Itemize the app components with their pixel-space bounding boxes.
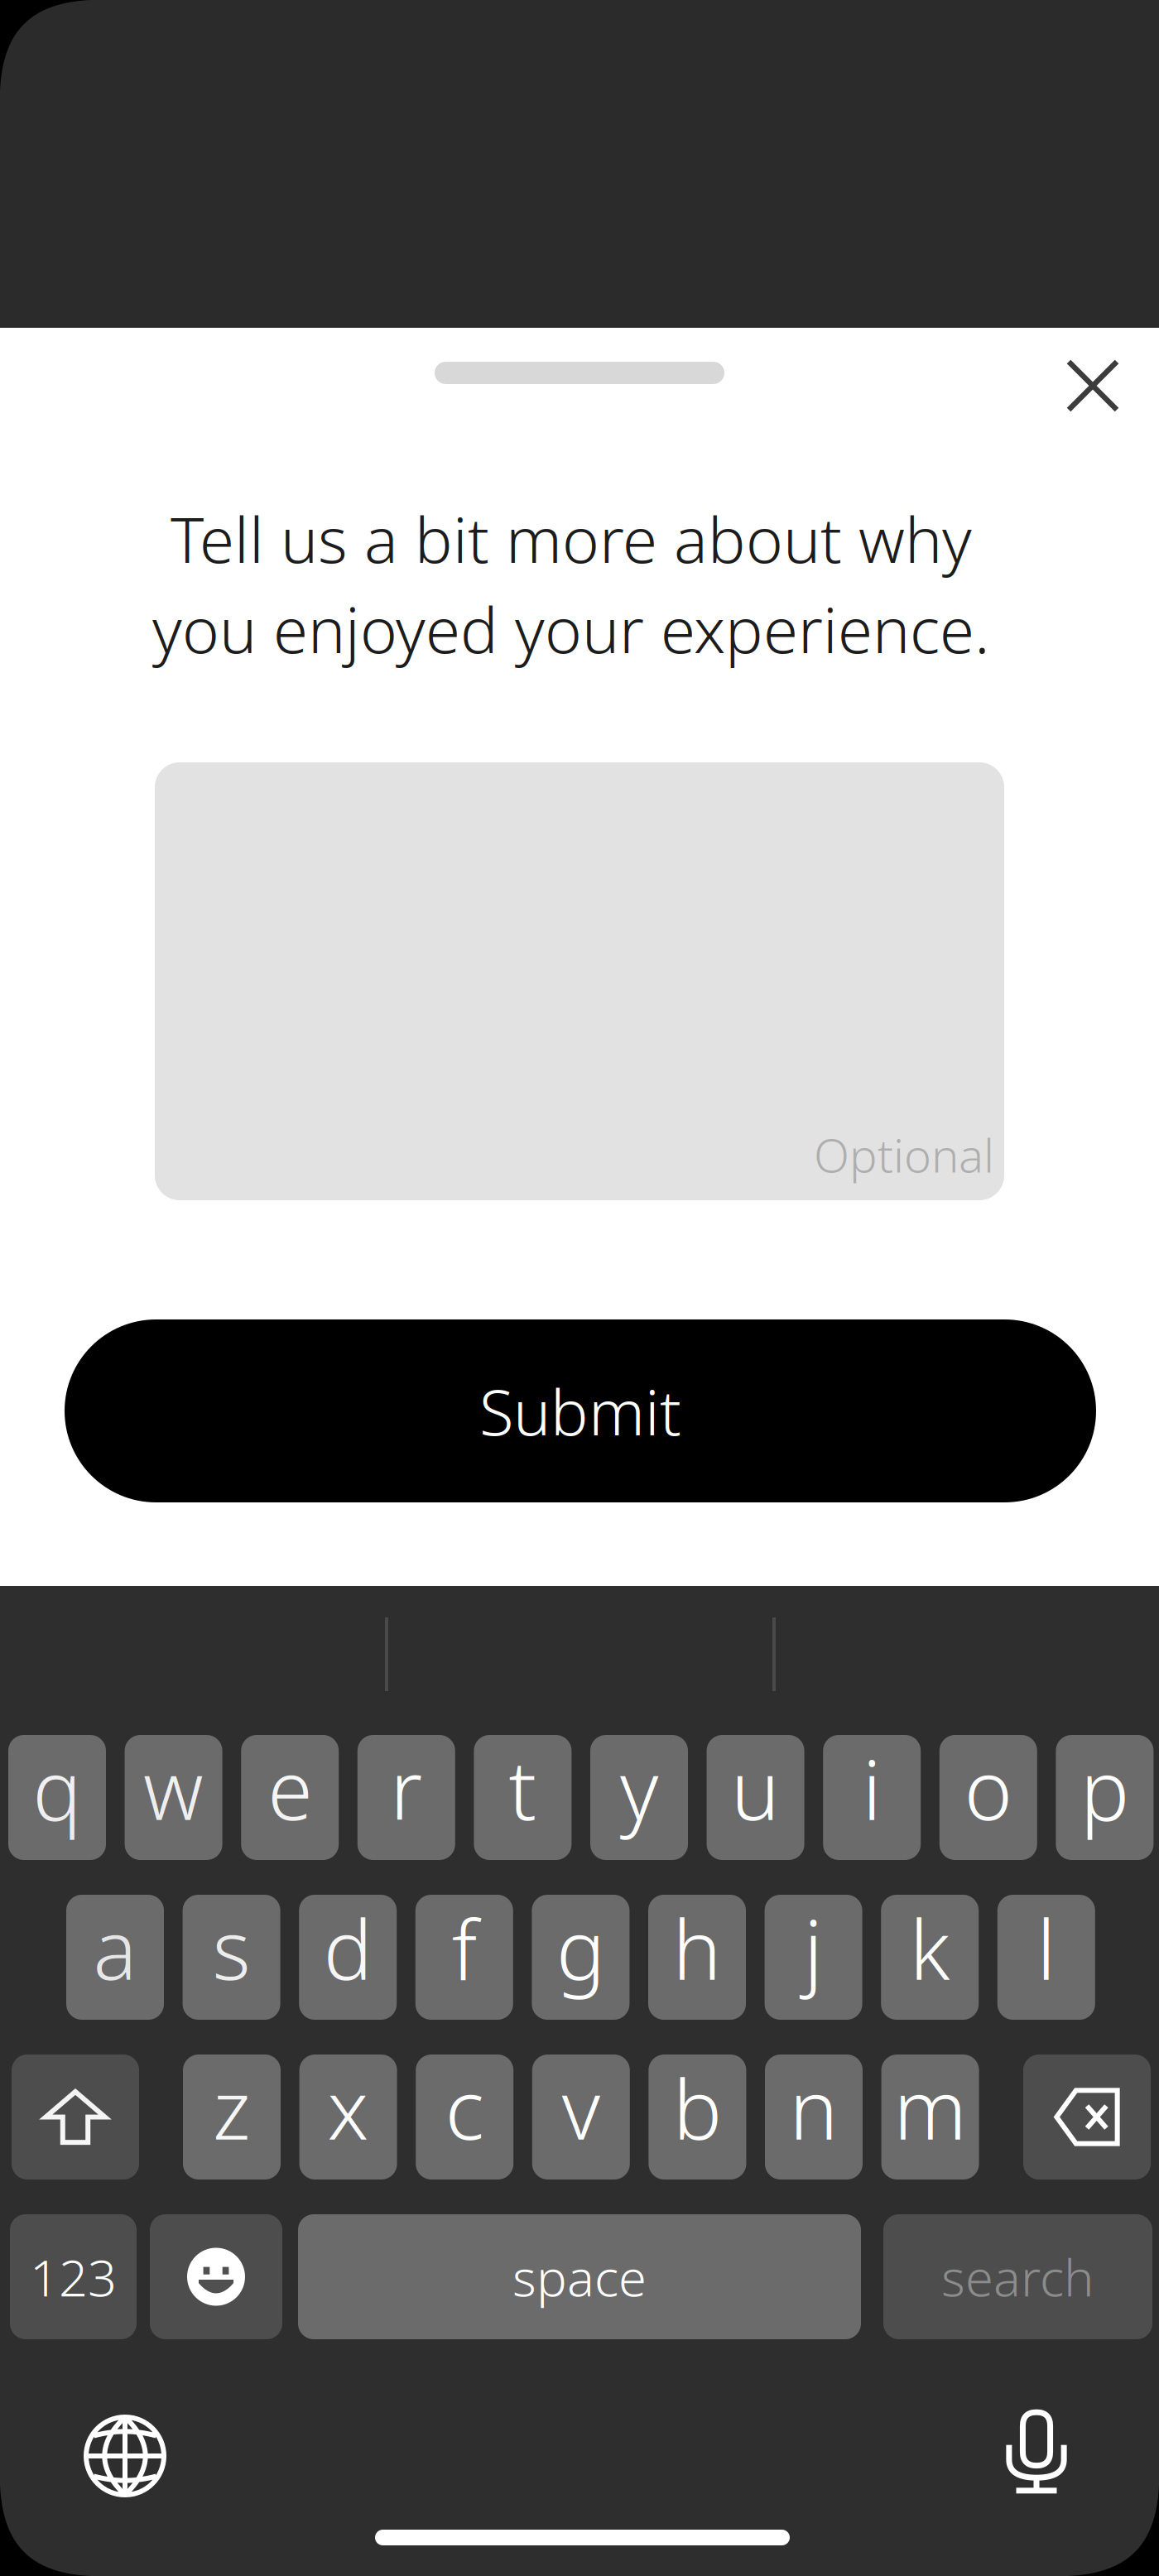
staticText: c: [445, 2054, 484, 2162]
staticText: Optional: [814, 1124, 994, 1185]
button[interactable]: j: [765, 1895, 862, 2020]
staticText: b: [673, 2054, 722, 2162]
button[interactable]: d: [299, 1895, 397, 2020]
staticText: r: [390, 1734, 422, 1843]
button[interactable]: Dictate: [979, 2394, 1094, 2510]
button[interactable]: Shift: [12, 2055, 139, 2180]
staticText: p: [1080, 1734, 1129, 1843]
staticText: h: [673, 1894, 721, 2002]
button[interactable]: n: [765, 2055, 863, 2180]
staticText: a: [93, 1894, 137, 2002]
button[interactable]: g: [532, 1895, 630, 2020]
staticText: space: [512, 2243, 647, 2310]
button[interactable]: h: [648, 1895, 746, 2020]
staticText: you enjoyed your experience.: [152, 587, 990, 670]
button[interactable]: l: [997, 1895, 1095, 2020]
button[interactable]: Optional comment: [155, 762, 1004, 1200]
button[interactable]: Emoji: [150, 2214, 282, 2339]
button[interactable]: search: [883, 2214, 1152, 2339]
button[interactable]: Next keyboard: [67, 2398, 183, 2514]
button[interactable]: e: [241, 1735, 339, 1860]
button[interactable]: b: [649, 2055, 746, 2180]
button[interactable]: space: [298, 2214, 861, 2339]
staticText: k: [910, 1894, 950, 2002]
button[interactable]: v: [532, 2055, 630, 2180]
button[interactable]: k: [881, 1895, 979, 2020]
button[interactable]: x: [299, 2055, 397, 2180]
staticText: e: [268, 1734, 312, 1843]
button[interactable]: f: [415, 1895, 513, 2020]
staticText: f: [452, 1894, 477, 2002]
button[interactable]: s: [183, 1895, 280, 2020]
staticText: 123: [30, 2243, 117, 2310]
button[interactable]: Delete: [1023, 2055, 1151, 2180]
staticText: n: [789, 2054, 838, 2162]
staticText: d: [323, 1894, 372, 2002]
button[interactable]: Close: [1035, 328, 1151, 444]
button[interactable]: 123: [10, 2214, 137, 2339]
button[interactable]: Submit: [65, 1319, 1096, 1502]
staticText: i: [862, 1734, 881, 1843]
staticText: z: [213, 2054, 251, 2162]
staticText: search: [941, 2243, 1094, 2310]
button[interactable]: t: [474, 1735, 572, 1860]
button[interactable]: m: [881, 2055, 979, 2180]
staticText: q: [33, 1734, 82, 1843]
staticText: m: [894, 2054, 967, 2162]
button[interactable]: u: [707, 1735, 804, 1860]
button[interactable]: p: [1056, 1735, 1154, 1860]
staticText: s: [212, 1894, 251, 2002]
staticText: u: [731, 1734, 780, 1843]
button[interactable]: z: [183, 2055, 281, 2180]
button[interactable]: c: [416, 2055, 513, 2180]
button[interactable]: i: [823, 1735, 921, 1860]
button[interactable]: q: [8, 1735, 106, 1860]
button[interactable]: a: [66, 1895, 164, 2020]
staticText: t: [509, 1734, 537, 1843]
staticText: v: [562, 2054, 600, 2162]
staticText: Tell us a bit more about why: [171, 497, 972, 580]
button[interactable]: y: [590, 1735, 688, 1860]
staticText: o: [964, 1734, 1012, 1843]
button[interactable]: r: [357, 1735, 455, 1860]
staticText: x: [328, 2054, 369, 2162]
staticText: y: [620, 1734, 658, 1843]
staticText: Submit: [479, 1369, 681, 1453]
button[interactable]: o: [939, 1735, 1037, 1860]
staticText: l: [1037, 1894, 1056, 2002]
staticText: w: [143, 1734, 204, 1843]
staticText: g: [556, 1894, 605, 2002]
staticText: j: [804, 1894, 823, 2002]
button[interactable]: w: [125, 1735, 222, 1860]
